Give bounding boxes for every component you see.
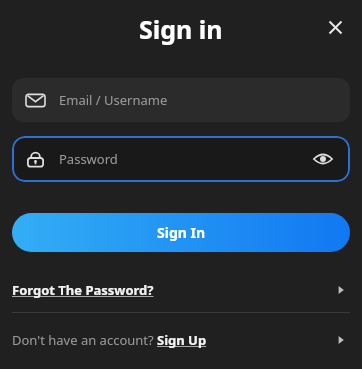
button[interactable]: Don't have an account? Sign Up xyxy=(12,326,350,354)
other: Open xyxy=(332,281,350,299)
button[interactable]: Forgot The Password? xyxy=(12,275,350,305)
button[interactable]: Sign In xyxy=(12,213,350,252)
staticText: Don't have an account? Sign Up xyxy=(12,331,207,349)
staticText: Sign in xyxy=(139,12,223,46)
staticText: Password xyxy=(59,150,310,168)
staticText: Forgot The Password? xyxy=(12,281,154,299)
staticText: Sign In xyxy=(157,223,206,242)
staticText: Email / Username xyxy=(59,91,168,109)
button[interactable]: Show password xyxy=(310,146,336,172)
button[interactable]: Password xyxy=(12,136,350,182)
other: Open xyxy=(332,331,350,349)
button[interactable]: Email / Username xyxy=(12,78,350,122)
button[interactable]: Close xyxy=(318,10,352,44)
